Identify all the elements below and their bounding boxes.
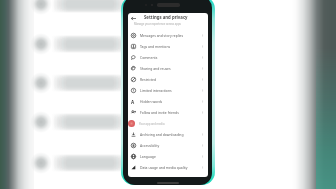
button[interactable]: Sharing and reuses [128,63,208,74]
button[interactable]: Accessibility [128,140,208,151]
staticText: Comments [140,55,158,60]
button[interactable]: Data usage and media quality [128,162,208,173]
staticText: Sharing and reuses [140,66,171,71]
staticText: Data usage and media quality [140,165,188,170]
button[interactable]: Aa [128,96,208,107]
button[interactable]: Limited interactions [128,85,208,96]
staticText: Limited interactions [140,88,172,93]
staticText: Tags and mentions [140,44,171,49]
staticText: Settings and privacy [144,14,188,20]
button[interactable]: Back [129,14,138,23]
button[interactable]: Comments [128,52,208,63]
button[interactable]: Restricted [128,74,208,85]
staticText: Language [140,154,156,159]
button[interactable]: Messages and story replies [128,30,208,41]
staticText: Hidden words [140,99,163,104]
button[interactable]: Follow and invite friends [128,107,208,118]
staticText: Restricted [140,77,156,82]
staticText: Accessibility [140,143,160,148]
staticText: Aa [131,99,136,104]
staticText: Your app and media [139,122,165,126]
staticText: Messages and story replies [140,33,184,38]
button[interactable]: Tags and mentions [128,41,208,52]
staticText: Archiving and downloading [140,132,184,137]
staticText: Follow and invite friends [140,110,179,115]
button[interactable]: Language [128,151,208,162]
staticText: Manage your experience across apps [134,22,181,26]
button[interactable]: Archiving and downloading [128,129,208,140]
